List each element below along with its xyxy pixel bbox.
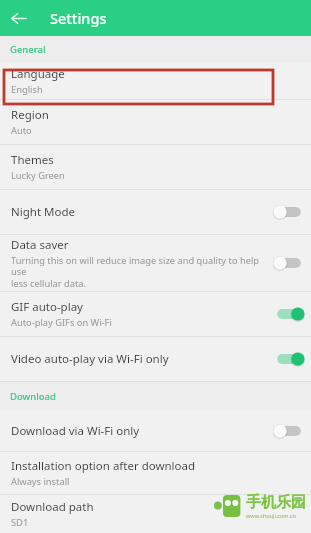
button[interactable]: Night Mode [0,190,311,234]
staticText: Settings [50,8,107,28]
staticText: Turning this on will reduce image size a… [11,254,273,290]
staticText: Download path [11,499,94,515]
staticText: Themes [11,152,54,168]
staticText: Installation option after download [11,458,196,474]
staticText: Language [11,66,65,82]
staticText: Lucky Green [11,169,65,182]
staticText: GIF auto-play [11,299,83,315]
button[interactable]: Data saver [0,235,311,291]
staticText: Night Mode [11,204,75,220]
staticText: Auto [11,124,32,137]
staticText: Download [10,390,56,403]
staticText: Video auto-play via Wi-Fi only [11,351,169,367]
staticText: SD1 [11,516,29,529]
button[interactable]: GIF auto-play [0,292,311,336]
staticText: Auto-play GIFs on Wi-Fi [11,316,112,329]
staticText: www.shouji.com.cn [246,512,296,519]
button[interactable]: Video auto-play via Wi-Fi only [0,337,311,381]
button[interactable]: Back [0,0,36,36]
staticText: Download via Wi-Fi only [11,423,140,439]
staticText: Region [11,107,49,123]
staticText: Always install [11,475,70,488]
staticText: 手机乐园 [246,493,306,512]
staticText: Data saver [11,237,69,253]
button[interactable]: Installation option after download [0,452,311,494]
button[interactable]: Language [0,63,311,99]
button[interactable]: Region [0,100,311,144]
staticText: English [11,83,43,96]
button[interactable]: Themes [0,145,311,189]
button[interactable]: Download via Wi-Fi only [0,411,311,451]
button[interactable]: Download path [0,495,311,533]
staticText: General [10,43,46,56]
